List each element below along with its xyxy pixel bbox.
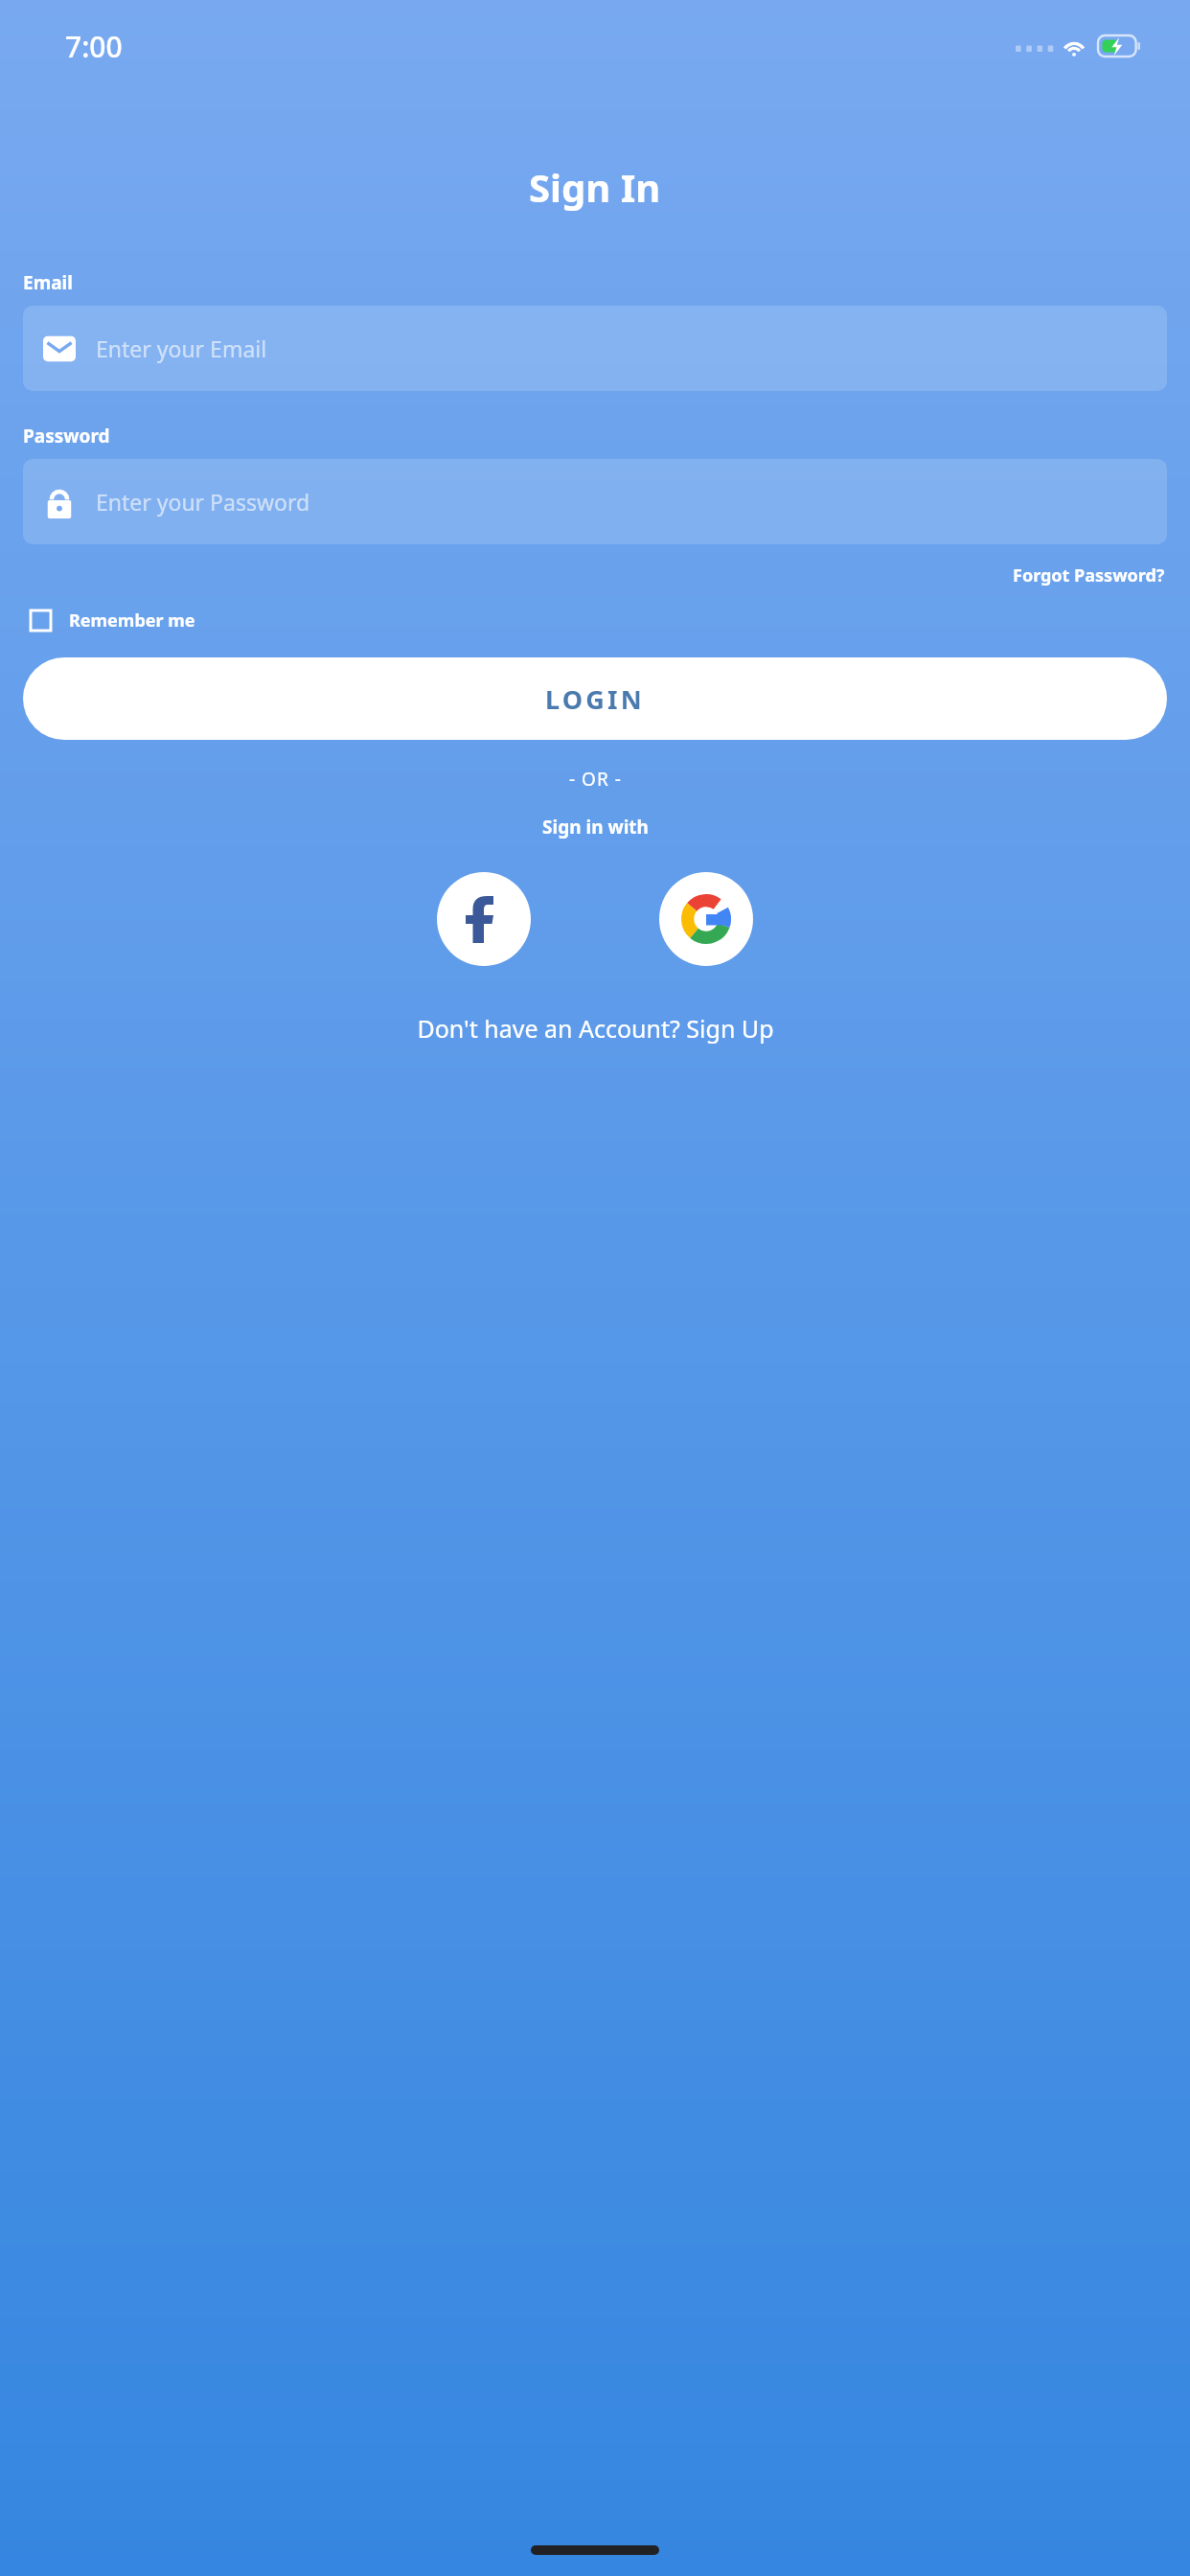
staticText: Email [23, 270, 73, 295]
button[interactable]: Don't have an Account? Sign Up [411, 1008, 780, 1048]
staticText: - OR - [569, 767, 622, 792]
staticText: Enter your Password [96, 487, 310, 517]
staticText: Sign In [529, 161, 661, 213]
staticText: 7:00 [65, 27, 123, 66]
staticText: LOGIN [545, 681, 645, 717]
button[interactable]: Enter your Password [23, 459, 1167, 544]
staticText: Forgot Password? [1013, 563, 1165, 587]
button[interactable]: LOGIN [23, 657, 1167, 740]
button[interactable]: Forgot Password? [1011, 560, 1167, 591]
staticText: Remember me [69, 609, 195, 632]
staticText: Enter your Email [96, 333, 267, 363]
staticText: Sign in with [542, 815, 649, 839]
staticText: Password [23, 424, 110, 448]
button[interactable]: Enter your Email [23, 306, 1167, 391]
button[interactable]: Remember me [23, 605, 1167, 636]
button[interactable]: Sign in with Facebook [437, 872, 531, 966]
staticText: Don't have an Account? Sign Up [417, 1012, 774, 1045]
button[interactable]: Sign in with Google [659, 872, 753, 966]
